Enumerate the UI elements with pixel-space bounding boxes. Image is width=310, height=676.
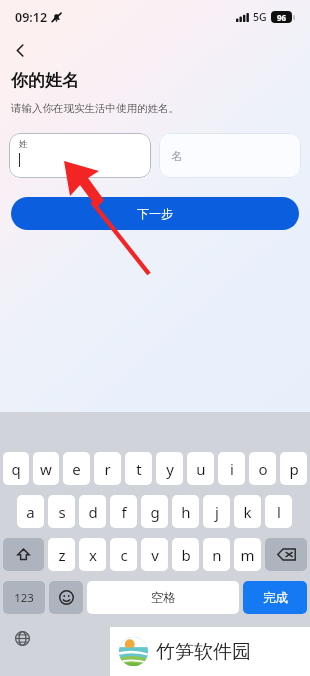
button[interactable]: s xyxy=(48,495,75,528)
button[interactable]: k xyxy=(234,495,261,528)
button[interactable]: x xyxy=(79,538,106,571)
button[interactable]: y xyxy=(156,452,183,485)
button[interactable]: f xyxy=(110,495,137,528)
button[interactable]: l xyxy=(265,495,292,528)
staticText: k xyxy=(243,502,252,522)
button[interactable]: z xyxy=(48,538,75,571)
button[interactable]: w xyxy=(33,452,59,485)
staticText: s xyxy=(58,502,66,522)
staticText: t xyxy=(136,459,142,479)
staticText: v xyxy=(151,545,159,565)
staticText: c xyxy=(120,545,128,565)
button[interactable]: h xyxy=(172,495,199,528)
staticText: 竹笋软件园 xyxy=(156,640,251,664)
button[interactable]: n xyxy=(203,538,230,571)
button[interactable]: c xyxy=(110,538,137,571)
staticText: b xyxy=(181,545,191,565)
button[interactable]: d xyxy=(79,495,106,528)
button[interactable]: Shift xyxy=(3,538,44,571)
staticText: z xyxy=(58,545,66,565)
staticText: d xyxy=(88,502,98,522)
staticText: 09:12 xyxy=(15,9,48,26)
button[interactable]: Change keyboard language xyxy=(0,625,44,651)
staticText: h xyxy=(181,502,191,522)
staticText: 5G xyxy=(253,10,267,24)
staticText: x xyxy=(89,545,97,565)
staticText: 96 xyxy=(277,12,287,23)
button[interactable]: t xyxy=(125,452,152,485)
staticText: 请输入你在现实生活中使用的姓名。 xyxy=(11,102,179,115)
button[interactable]: r xyxy=(94,452,121,485)
button[interactable]: 123 xyxy=(3,581,45,614)
button[interactable]: 下一步 xyxy=(11,197,299,230)
button[interactable]: a xyxy=(17,495,44,528)
staticText: r xyxy=(104,459,111,479)
staticText: i xyxy=(230,459,234,479)
button[interactable]: q xyxy=(3,452,29,485)
staticText: 123 xyxy=(14,590,34,606)
button[interactable]: e xyxy=(63,452,90,485)
staticText: 空格 xyxy=(151,590,176,606)
staticText: p xyxy=(289,459,299,479)
button[interactable]: b xyxy=(172,538,199,571)
staticText: 下一步 xyxy=(137,206,173,221)
button[interactable]: p xyxy=(280,452,307,485)
button[interactable]: Backspace xyxy=(265,538,307,571)
button[interactable]: 空格 xyxy=(87,581,239,614)
button[interactable]: g xyxy=(141,495,168,528)
staticText: e xyxy=(72,459,81,479)
button[interactable]: 姓 xyxy=(9,133,151,178)
button[interactable]: v xyxy=(141,538,168,571)
staticText: u xyxy=(196,459,206,479)
staticText: o xyxy=(258,459,268,479)
button[interactable]: j xyxy=(203,495,230,528)
staticText: w xyxy=(40,459,52,479)
staticText: g xyxy=(150,502,160,522)
staticText: j xyxy=(215,502,219,522)
staticText: 完成 xyxy=(263,590,288,606)
staticText: m xyxy=(240,545,255,565)
button[interactable]: 名 xyxy=(159,133,301,178)
button[interactable]: o xyxy=(249,452,276,485)
staticText: 名 xyxy=(171,149,182,163)
staticText: y xyxy=(166,459,174,479)
staticText: f xyxy=(121,502,127,522)
staticText: l xyxy=(277,502,281,522)
button[interactable]: Emoji xyxy=(49,581,83,614)
button[interactable]: Back xyxy=(4,34,36,66)
staticText: 姓 xyxy=(19,139,28,150)
button[interactable]: 完成 xyxy=(243,581,307,614)
button[interactable]: i xyxy=(218,452,245,485)
staticText: n xyxy=(212,545,222,565)
staticText: 你的姓名 xyxy=(11,70,79,91)
staticText: a xyxy=(26,502,35,522)
staticText: q xyxy=(11,459,21,479)
button[interactable]: u xyxy=(187,452,214,485)
button[interactable]: m xyxy=(234,538,261,571)
